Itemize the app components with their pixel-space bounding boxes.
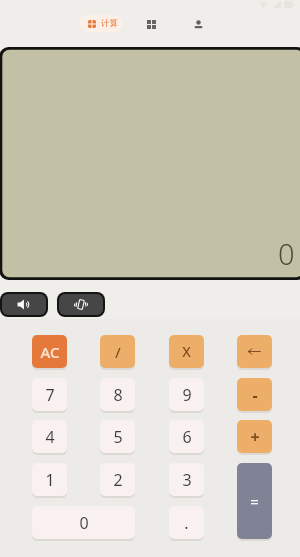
button[interactable]: + — [237, 420, 272, 453]
button[interactable]: Apps — [140, 13, 162, 35]
staticText: 1 — [45, 469, 55, 491]
button[interactable]: Profile — [187, 13, 209, 35]
button[interactable]: Sound — [2, 294, 46, 315]
button[interactable]: Vibrate — [59, 294, 103, 315]
button[interactable]: 4 — [32, 420, 67, 453]
button[interactable]: 0 — [32, 506, 135, 539]
button[interactable]: Backspace — [237, 335, 272, 368]
staticText: / — [115, 342, 121, 362]
staticText: 8 — [113, 384, 123, 406]
staticText: + — [250, 426, 260, 448]
button[interactable]: X — [169, 335, 204, 368]
button[interactable]: . — [169, 506, 204, 539]
staticText: 0 — [278, 234, 295, 273]
staticText: X — [182, 342, 191, 361]
button[interactable]: 3 — [169, 463, 204, 496]
button[interactable]: 7 — [32, 378, 67, 411]
button[interactable]: 6 — [169, 420, 204, 453]
staticText: . — [184, 512, 189, 534]
button[interactable]: 5 — [100, 420, 135, 453]
button[interactable]: 2 — [100, 463, 135, 496]
staticText: 9 — [182, 384, 192, 406]
staticText: - — [252, 384, 258, 406]
button[interactable]: 9 — [169, 378, 204, 411]
staticText: 3 — [182, 469, 192, 491]
staticText: 0 — [79, 512, 89, 534]
staticText: AC — [40, 342, 60, 362]
staticText: 6 — [182, 426, 192, 448]
button[interactable]: AC — [32, 335, 67, 368]
button[interactable]: 8 — [100, 378, 135, 411]
button[interactable]: 计算 — [79, 15, 123, 32]
button[interactable]: - — [237, 378, 272, 411]
button[interactable]: = — [237, 463, 272, 539]
staticText: 计算 — [101, 18, 118, 29]
staticText: = — [250, 491, 259, 511]
staticText: 7 — [45, 384, 55, 406]
staticText: 2 — [113, 469, 123, 491]
button[interactable]: 1 — [32, 463, 67, 496]
staticText: 4 — [45, 426, 55, 448]
button[interactable]: / — [100, 335, 135, 368]
staticText: 5 — [113, 426, 123, 448]
